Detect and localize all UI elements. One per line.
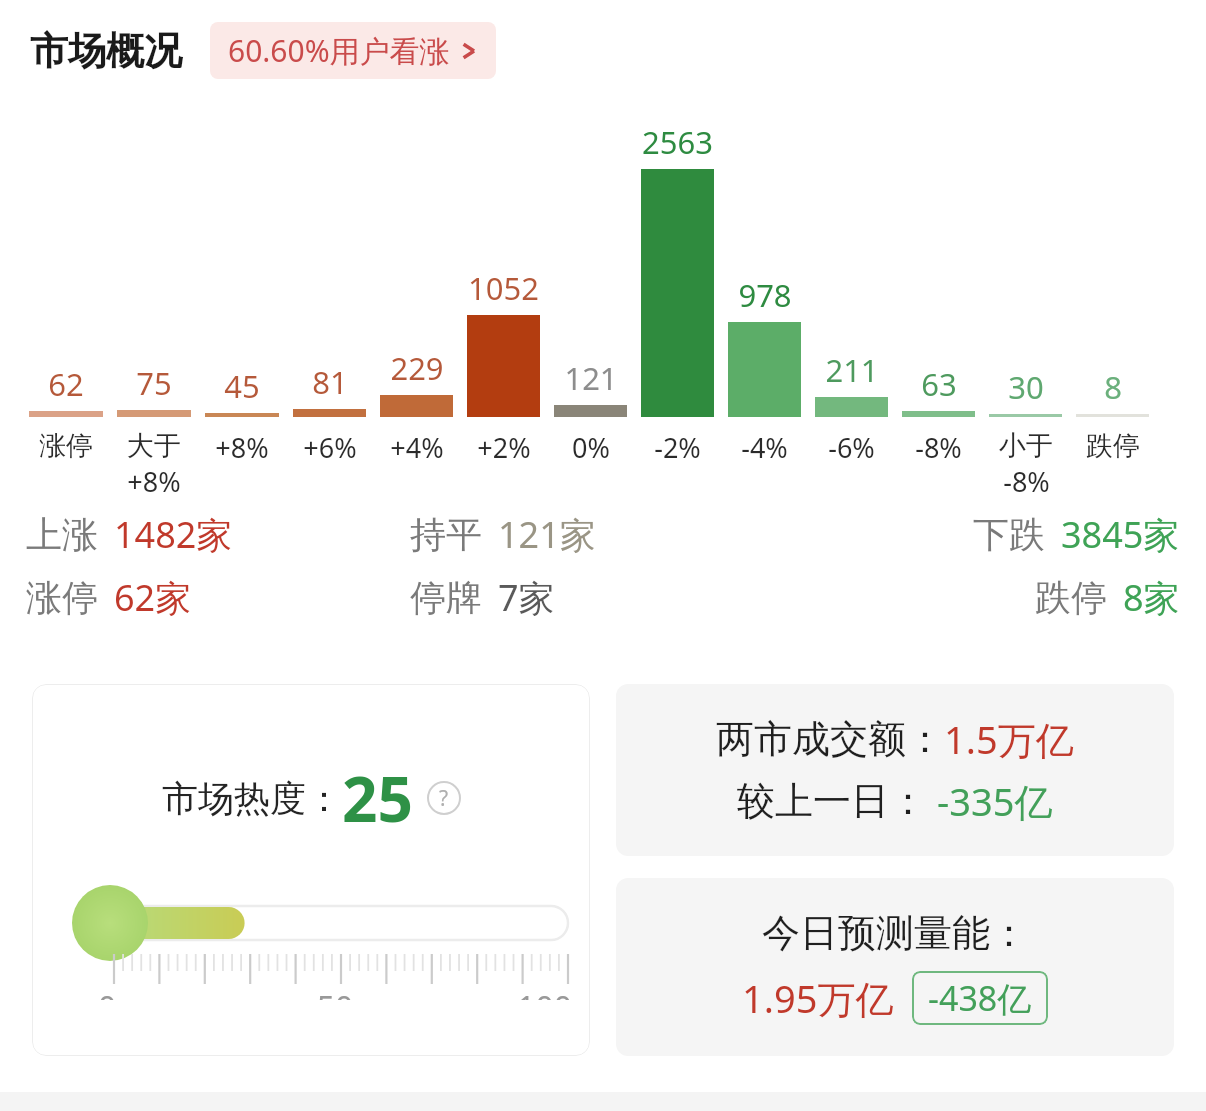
staticText: 75 — [136, 362, 172, 404]
button[interactable]: 978 — [721, 87, 808, 466]
button[interactable]: 两市成交额： — [616, 684, 1174, 856]
staticText: -4% — [741, 429, 788, 466]
staticText: 978 — [738, 274, 792, 316]
staticText: 3845家 — [1061, 510, 1180, 559]
button[interactable]: 30 — [982, 87, 1069, 500]
button[interactable]: 229 — [373, 87, 460, 466]
staticText: 8家 — [1123, 573, 1180, 622]
staticText: 1.95万亿 — [742, 972, 894, 1024]
staticText: +8% — [215, 429, 269, 466]
button[interactable]: 8 — [1069, 87, 1156, 463]
button[interactable]: 60.60%用户看涨 — [210, 22, 496, 79]
button[interactable]: 1052 — [460, 87, 547, 466]
staticText: 81 — [312, 361, 348, 403]
staticText: 1482家 — [114, 510, 233, 559]
staticText: 停牌 — [410, 575, 482, 620]
staticText: 1052 — [468, 267, 539, 309]
staticText: +4% — [390, 429, 444, 466]
staticText: 市场热度： — [162, 776, 342, 821]
staticText: 211 — [825, 349, 879, 391]
staticText: 62 — [48, 363, 84, 405]
staticText: -8% — [1003, 463, 1050, 500]
staticText: 上涨 — [26, 512, 98, 557]
button[interactable]: 说明 — [427, 781, 461, 815]
button[interactable]: 62 — [22, 87, 110, 463]
staticText: 1.5万亿 — [944, 713, 1074, 765]
staticText: ? — [439, 784, 449, 813]
button[interactable]: 75 — [110, 87, 198, 500]
staticText: -335亿 — [937, 775, 1053, 827]
staticText: 两市成交额： — [716, 715, 944, 763]
staticText: 121家 — [498, 510, 596, 559]
staticText: 跌停 — [1035, 575, 1107, 620]
staticText: 2563 — [642, 121, 713, 163]
staticText: 45 — [224, 365, 260, 407]
staticText: 小于 — [999, 429, 1053, 463]
button[interactable]: 63 — [895, 87, 982, 466]
staticText: -8% — [915, 429, 962, 466]
staticText: +2% — [477, 429, 531, 466]
staticText: 较上一日： — [737, 777, 927, 825]
button[interactable]: 81 — [286, 87, 373, 466]
staticText: 63 — [921, 363, 957, 405]
staticText: 大于 — [127, 429, 181, 463]
button[interactable]: 211 — [808, 87, 895, 466]
staticText: 市场概况 — [30, 27, 182, 75]
staticText: 62家 — [114, 573, 192, 622]
button[interactable]: 2563 — [634, 87, 721, 466]
staticText: +8% — [127, 463, 181, 500]
staticText: 涨停 — [39, 429, 93, 463]
staticText: 0% — [572, 429, 610, 466]
staticText: 100 — [414, 986, 572, 1000]
staticText: 60.60%用户看涨 — [228, 30, 450, 71]
staticText: 跌停 — [1086, 429, 1140, 463]
button[interactable]: 45 — [198, 87, 286, 466]
staticText: 0 — [98, 986, 256, 1000]
staticText: 25 — [342, 756, 413, 840]
staticText: 30 — [1008, 366, 1044, 408]
staticText: 持平 — [410, 512, 482, 557]
staticText: 121 — [564, 357, 618, 399]
staticText: 50 — [256, 986, 414, 1000]
staticText: 今日预测量能： — [762, 909, 1028, 957]
staticText: 涨停 — [26, 575, 98, 620]
staticText: -438亿 — [928, 975, 1032, 1021]
staticText: 7家 — [498, 573, 555, 622]
button[interactable]: 121 — [547, 87, 634, 466]
staticText: +6% — [303, 429, 357, 466]
staticText: -2% — [654, 429, 701, 466]
button[interactable]: 市场热度： — [32, 684, 590, 1056]
staticText: 8 — [1104, 366, 1122, 408]
staticText: -6% — [828, 429, 875, 466]
button[interactable]: 今日预测量能： — [616, 878, 1174, 1056]
staticText: 下跌 — [973, 512, 1045, 557]
staticText: 229 — [390, 347, 444, 389]
